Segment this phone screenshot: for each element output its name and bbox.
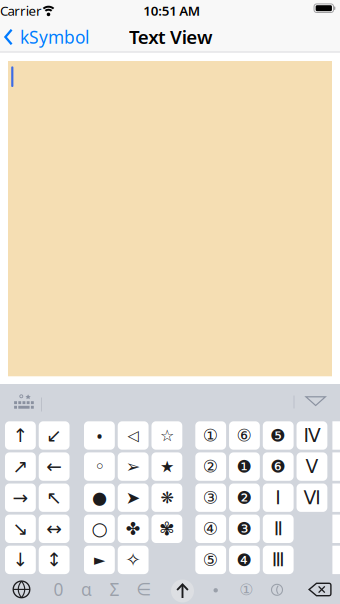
staticText: ❸	[236, 519, 252, 539]
staticText: ↘	[12, 518, 28, 539]
staticText: •	[96, 423, 103, 448]
button[interactable]: ↙	[39, 421, 70, 450]
button[interactable]: Delete	[308, 582, 331, 596]
button[interactable]: ✾	[151, 515, 182, 543]
staticText: ∈	[136, 579, 151, 599]
button[interactable]: kSymbol	[4, 25, 89, 48]
staticText: ❺	[270, 426, 286, 445]
button[interactable]: ⑥	[229, 421, 260, 450]
staticText: Ⅰ	[275, 487, 281, 508]
button[interactable]: Σ	[102, 577, 126, 601]
staticText: Ⅱ	[274, 518, 283, 539]
staticText: ❹	[236, 550, 252, 570]
staticText: Ⅳ	[303, 425, 320, 446]
button[interactable]: →	[5, 483, 36, 512]
staticText: Ⅴ	[305, 456, 318, 477]
staticText: ►	[94, 552, 105, 568]
button[interactable]: α	[74, 577, 98, 601]
staticText: ⑥	[236, 426, 252, 445]
staticText: ❋	[160, 489, 173, 507]
button[interactable]: •	[84, 421, 115, 450]
button[interactable]: ◦	[84, 452, 115, 481]
staticText: →	[12, 487, 28, 508]
staticText: 0	[53, 578, 63, 601]
button[interactable]: ►	[84, 546, 115, 574]
button[interactable]: ④	[195, 515, 226, 543]
staticText: ❷	[236, 488, 252, 508]
button[interactable]: Ⅳ	[297, 421, 327, 450]
button[interactable]: ↘	[5, 515, 36, 543]
button[interactable]: ❺	[263, 421, 294, 450]
staticText: ↕	[46, 549, 62, 570]
button[interactable]: ●	[84, 483, 115, 512]
button[interactable]: Ⅱ	[263, 515, 294, 543]
button[interactable]: 0	[46, 577, 70, 601]
staticText: ❻	[270, 457, 286, 476]
button[interactable]: ❹	[229, 546, 260, 574]
button[interactable]: ❻	[263, 452, 294, 481]
button[interactable]: ✤	[118, 515, 149, 543]
button[interactable]: Arrows	[171, 579, 194, 602]
button[interactable]: ❶	[229, 452, 260, 481]
button[interactable]: ❸	[229, 515, 260, 543]
staticText: Carrier	[0, 2, 42, 19]
button[interactable]: ★	[151, 452, 182, 481]
staticText: ○	[91, 518, 107, 539]
button[interactable]: ◁	[118, 421, 149, 450]
staticText: ↑	[12, 425, 28, 446]
staticText: ●	[92, 488, 107, 508]
staticText: ✧	[125, 549, 141, 570]
button[interactable]: ③	[195, 483, 226, 512]
staticText: ↓	[12, 549, 28, 570]
button[interactable]: Ⅵ	[297, 483, 327, 512]
button[interactable]: ②	[195, 452, 226, 481]
button[interactable]: ↑	[5, 421, 36, 450]
staticText: Σ	[109, 578, 119, 601]
button[interactable]: ①	[234, 578, 258, 602]
staticText: Ⅵ	[303, 487, 320, 508]
button[interactable]: ➢	[118, 452, 149, 481]
staticText: 10:51 AM	[143, 2, 200, 19]
button[interactable]: ↕	[39, 546, 70, 574]
staticText: ←	[46, 456, 62, 477]
button[interactable]: ①	[195, 421, 226, 450]
staticText: α	[81, 578, 92, 601]
button[interactable]: Keyboard layout	[13, 393, 35, 410]
button[interactable]: Ⅲ	[263, 546, 294, 574]
button[interactable]: ⑤	[195, 546, 226, 574]
button[interactable]: ↔	[39, 515, 70, 543]
staticText: ②	[203, 457, 219, 476]
staticText: ★	[160, 457, 174, 476]
staticText: ❶	[236, 457, 252, 476]
staticText: ➤	[126, 488, 141, 508]
staticText: ↔	[46, 518, 62, 539]
staticText: ➢	[126, 457, 141, 476]
button[interactable]: ❷	[229, 483, 260, 512]
button[interactable]: Next keyboard	[12, 580, 31, 599]
staticText: ↖	[46, 487, 62, 508]
staticText: ③	[203, 488, 219, 508]
staticText: ④	[203, 519, 219, 539]
button[interactable]: ➤	[118, 483, 149, 512]
button[interactable]: ❋	[151, 483, 182, 512]
staticText: ↗	[12, 456, 28, 477]
button[interactable]: ∈	[131, 577, 155, 601]
button[interactable]: Dismiss keyboard	[305, 396, 326, 406]
staticText: Ⅲ	[272, 549, 285, 570]
button[interactable]: ○	[84, 515, 115, 543]
button[interactable]: ✧	[118, 546, 149, 574]
button[interactable]: Enclosed characters	[270, 583, 283, 596]
button[interactable]: Ⅰ	[263, 483, 294, 512]
staticText: ☆	[160, 426, 174, 445]
staticText: ①	[203, 426, 219, 445]
button[interactable]: ↗	[5, 452, 36, 481]
button[interactable]: ☆	[151, 421, 182, 450]
staticText: ↙	[46, 425, 62, 446]
staticText: ◁	[128, 427, 139, 444]
button[interactable]: ↓	[5, 546, 36, 574]
button[interactable]: ↖	[39, 483, 70, 512]
button[interactable]: Shapes	[206, 580, 226, 600]
button[interactable]: Ⅴ	[297, 452, 327, 481]
staticText: Text View	[129, 24, 212, 49]
button[interactable]: ←	[39, 452, 70, 481]
